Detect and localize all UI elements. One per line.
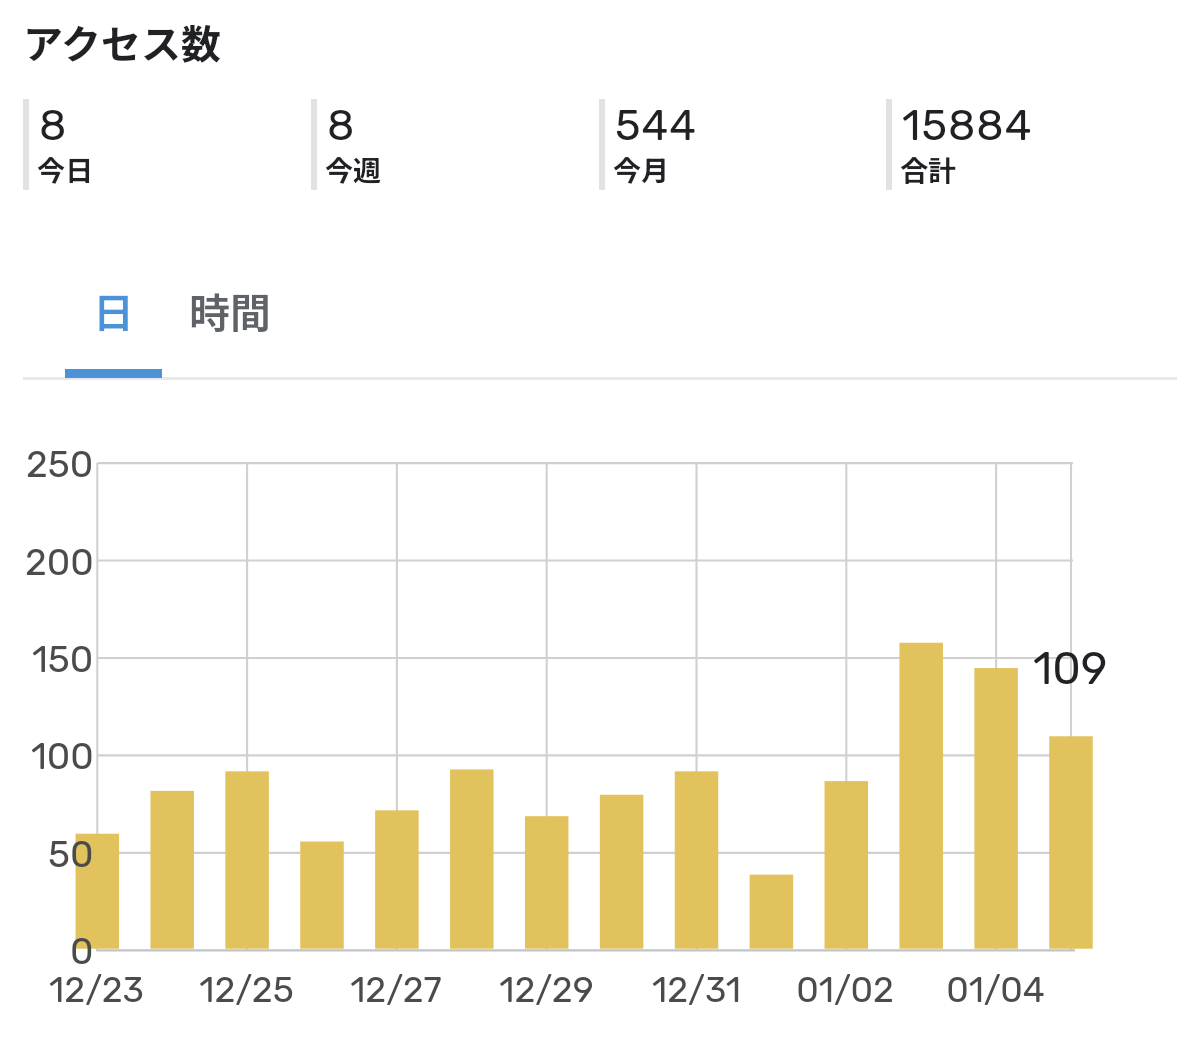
- staticText: 01/04: [946, 969, 1045, 1011]
- staticText: 今月: [613, 149, 670, 190]
- staticText: 250: [26, 442, 94, 486]
- staticText: 15884: [902, 100, 1033, 151]
- button[interactable]: 日: [64, 249, 163, 378]
- staticText: 0: [70, 929, 94, 973]
- staticText: 100: [31, 734, 94, 778]
- button[interactable]: 544: [599, 99, 881, 193]
- button[interactable]: 時間: [180, 249, 279, 378]
- staticText: 日: [93, 280, 134, 339]
- staticText: 12/23: [49, 969, 144, 1011]
- staticText: 12/27: [350, 969, 442, 1011]
- staticText: 合計: [900, 149, 957, 190]
- staticText: 時間: [189, 280, 271, 339]
- staticText: 8: [327, 100, 356, 151]
- staticText: 200: [25, 540, 94, 584]
- button[interactable]: 8: [23, 99, 305, 193]
- staticText: 8: [39, 100, 68, 151]
- staticText: 今日: [37, 149, 94, 190]
- staticText: 12/25: [199, 969, 294, 1011]
- staticText: 01/02: [796, 969, 894, 1011]
- staticText: 50: [48, 832, 94, 876]
- staticText: 544: [615, 100, 697, 151]
- staticText: 150: [32, 637, 94, 681]
- staticText: 12/29: [499, 969, 594, 1011]
- button[interactable]: 15884: [886, 99, 1168, 193]
- button[interactable]: 8: [311, 99, 593, 193]
- staticText: アクセス数: [23, 13, 221, 71]
- staticText: 12/31: [652, 969, 741, 1011]
- staticText: 109: [1033, 642, 1108, 695]
- staticText: 今週: [325, 149, 382, 190]
